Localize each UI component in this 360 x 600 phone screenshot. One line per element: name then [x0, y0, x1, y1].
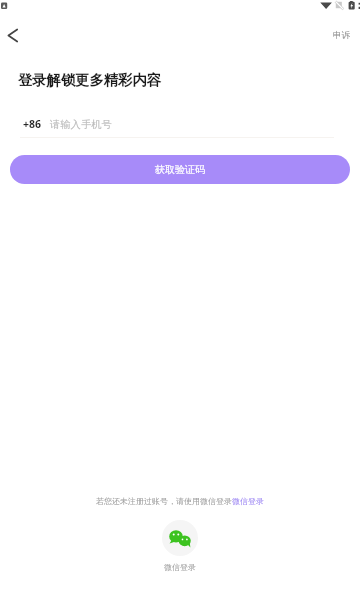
staticText: +86	[23, 117, 42, 131]
button[interactable]: Back	[0, 22, 26, 48]
staticText: 微信登录	[232, 496, 264, 506]
staticText: 微信登录	[164, 562, 196, 572]
staticText: 申诉	[333, 30, 351, 41]
staticText: 请输入手机号	[50, 118, 112, 131]
button[interactable]: WeChat login	[162, 520, 198, 556]
staticText: 登录解锁更多精彩内容	[18, 71, 161, 89]
button[interactable]: 申诉	[333, 30, 351, 41]
button[interactable]: 获取验证码	[10, 155, 350, 184]
button[interactable]: 微信登录	[232, 496, 264, 506]
staticText: 若您还未注册过账号，请使用微信登录	[96, 496, 232, 506]
staticText: 获取验证码	[155, 163, 205, 176]
